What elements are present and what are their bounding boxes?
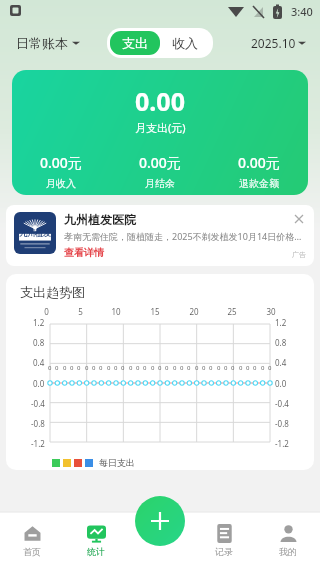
button[interactable]: Close ad bbox=[292, 212, 306, 226]
staticText: 收入 bbox=[172, 35, 198, 51]
staticText: 0 bbox=[173, 364, 177, 372]
staticText: 2025.10 bbox=[251, 35, 296, 51]
button[interactable]: Add record bbox=[135, 496, 185, 546]
staticText: 0 bbox=[239, 364, 243, 372]
staticText: 0 bbox=[224, 364, 228, 372]
staticText: 20 bbox=[189, 306, 199, 317]
staticText: 0.00元 bbox=[139, 153, 181, 172]
staticText: 25 bbox=[227, 306, 237, 317]
staticText: 0.8 bbox=[33, 337, 45, 348]
button[interactable]: 收入 bbox=[160, 31, 210, 55]
button[interactable]: 查看详情 bbox=[64, 246, 104, 259]
staticText: 日常账本 bbox=[16, 35, 68, 51]
button[interactable]: 统计 bbox=[64, 512, 128, 568]
staticText: 1.2 bbox=[33, 317, 45, 328]
staticText: 0.4 bbox=[275, 357, 287, 368]
staticText: 记录 bbox=[215, 546, 233, 557]
staticText: 0 bbox=[209, 364, 213, 372]
button[interactable]: 0.00 bbox=[12, 70, 308, 195]
staticText: -0.4 bbox=[275, 398, 289, 409]
staticText: 0 bbox=[195, 364, 199, 372]
button[interactable]: 0.00元 bbox=[110, 153, 209, 190]
staticText: 月结余 bbox=[145, 177, 175, 190]
staticText: 0 bbox=[165, 364, 169, 372]
staticText: 九州植发 bbox=[19, 228, 51, 238]
staticText: 0 bbox=[114, 364, 118, 372]
staticText: 1.2 bbox=[275, 317, 287, 328]
staticText: 3:40 bbox=[291, 4, 313, 19]
staticText: 0 bbox=[202, 364, 206, 372]
button[interactable]: 2025.10 bbox=[249, 31, 308, 55]
staticText: 0.0 bbox=[275, 378, 287, 389]
staticText: -0.4 bbox=[31, 398, 45, 409]
staticText: 0 bbox=[70, 364, 74, 372]
staticText: 0 bbox=[187, 364, 191, 372]
staticText: 0 bbox=[151, 364, 155, 372]
staticText: 0 bbox=[55, 364, 59, 372]
button[interactable]: 首页 bbox=[0, 512, 64, 568]
staticText: 0.00元 bbox=[238, 153, 280, 172]
staticText: 0 bbox=[48, 364, 52, 372]
staticText: 0 bbox=[77, 364, 81, 372]
staticText: 退款金额 bbox=[239, 177, 279, 190]
staticText: 0 bbox=[143, 364, 147, 372]
staticText: 0.00 bbox=[135, 84, 185, 118]
staticText: 0 bbox=[129, 364, 133, 372]
staticText: 支出趋势图 bbox=[20, 284, 85, 300]
staticText: 0 bbox=[99, 364, 103, 372]
staticText: 0 bbox=[85, 364, 89, 372]
staticText: 月收入 bbox=[46, 177, 76, 190]
button[interactable]: 日常账本 bbox=[14, 31, 82, 55]
button[interactable]: 0.00元 bbox=[209, 153, 308, 190]
staticText: 首页 bbox=[23, 546, 41, 557]
staticText: 0 bbox=[158, 364, 162, 372]
staticText: 0.4 bbox=[33, 357, 45, 368]
button[interactable]: 记录 bbox=[192, 512, 256, 568]
staticText: 支出 bbox=[122, 35, 148, 51]
staticText: -0.8 bbox=[31, 418, 45, 429]
staticText: -0.8 bbox=[275, 418, 289, 429]
staticText: 0 bbox=[231, 364, 235, 372]
staticText: 每日支出 bbox=[99, 457, 135, 468]
staticText: 0 bbox=[44, 306, 49, 317]
staticText: 统计 bbox=[87, 546, 105, 557]
button[interactable]: 0.00元 bbox=[12, 153, 110, 190]
staticText: 广告 bbox=[292, 250, 306, 259]
staticText: 九州植发医院 bbox=[64, 212, 136, 227]
staticText: 0 bbox=[92, 364, 96, 372]
staticText: 0 bbox=[121, 364, 125, 372]
staticText: -1.2 bbox=[31, 438, 45, 449]
staticText: 5 bbox=[78, 306, 83, 317]
staticText: 30 bbox=[266, 306, 276, 317]
staticText: 0 bbox=[261, 364, 265, 372]
staticText: 我的 bbox=[279, 546, 297, 557]
staticText: 0 bbox=[180, 364, 184, 372]
staticText: -1.2 bbox=[275, 438, 289, 449]
staticText: 0 bbox=[136, 364, 140, 372]
staticText: 0.00元 bbox=[40, 153, 82, 172]
staticText: 0 bbox=[253, 364, 257, 372]
button[interactable]: 九州植发 bbox=[6, 205, 314, 266]
staticText: 0 bbox=[107, 364, 111, 372]
staticText: 0 bbox=[63, 364, 67, 372]
staticText: 孝南无需住院，随植随走，2025不剃发植发10月14日价格… bbox=[64, 230, 302, 242]
staticText: 月支出(元) bbox=[135, 120, 186, 135]
button[interactable]: 我的 bbox=[256, 512, 320, 568]
button[interactable]: 支出 bbox=[110, 31, 160, 55]
staticText: 0.0 bbox=[33, 378, 45, 389]
staticText: 0 bbox=[246, 364, 250, 372]
staticText: 15 bbox=[150, 306, 160, 317]
staticText: 0 bbox=[217, 364, 221, 372]
staticText: 10 bbox=[111, 306, 121, 317]
staticText: 0.8 bbox=[275, 337, 287, 348]
staticText: 0 bbox=[268, 364, 272, 372]
